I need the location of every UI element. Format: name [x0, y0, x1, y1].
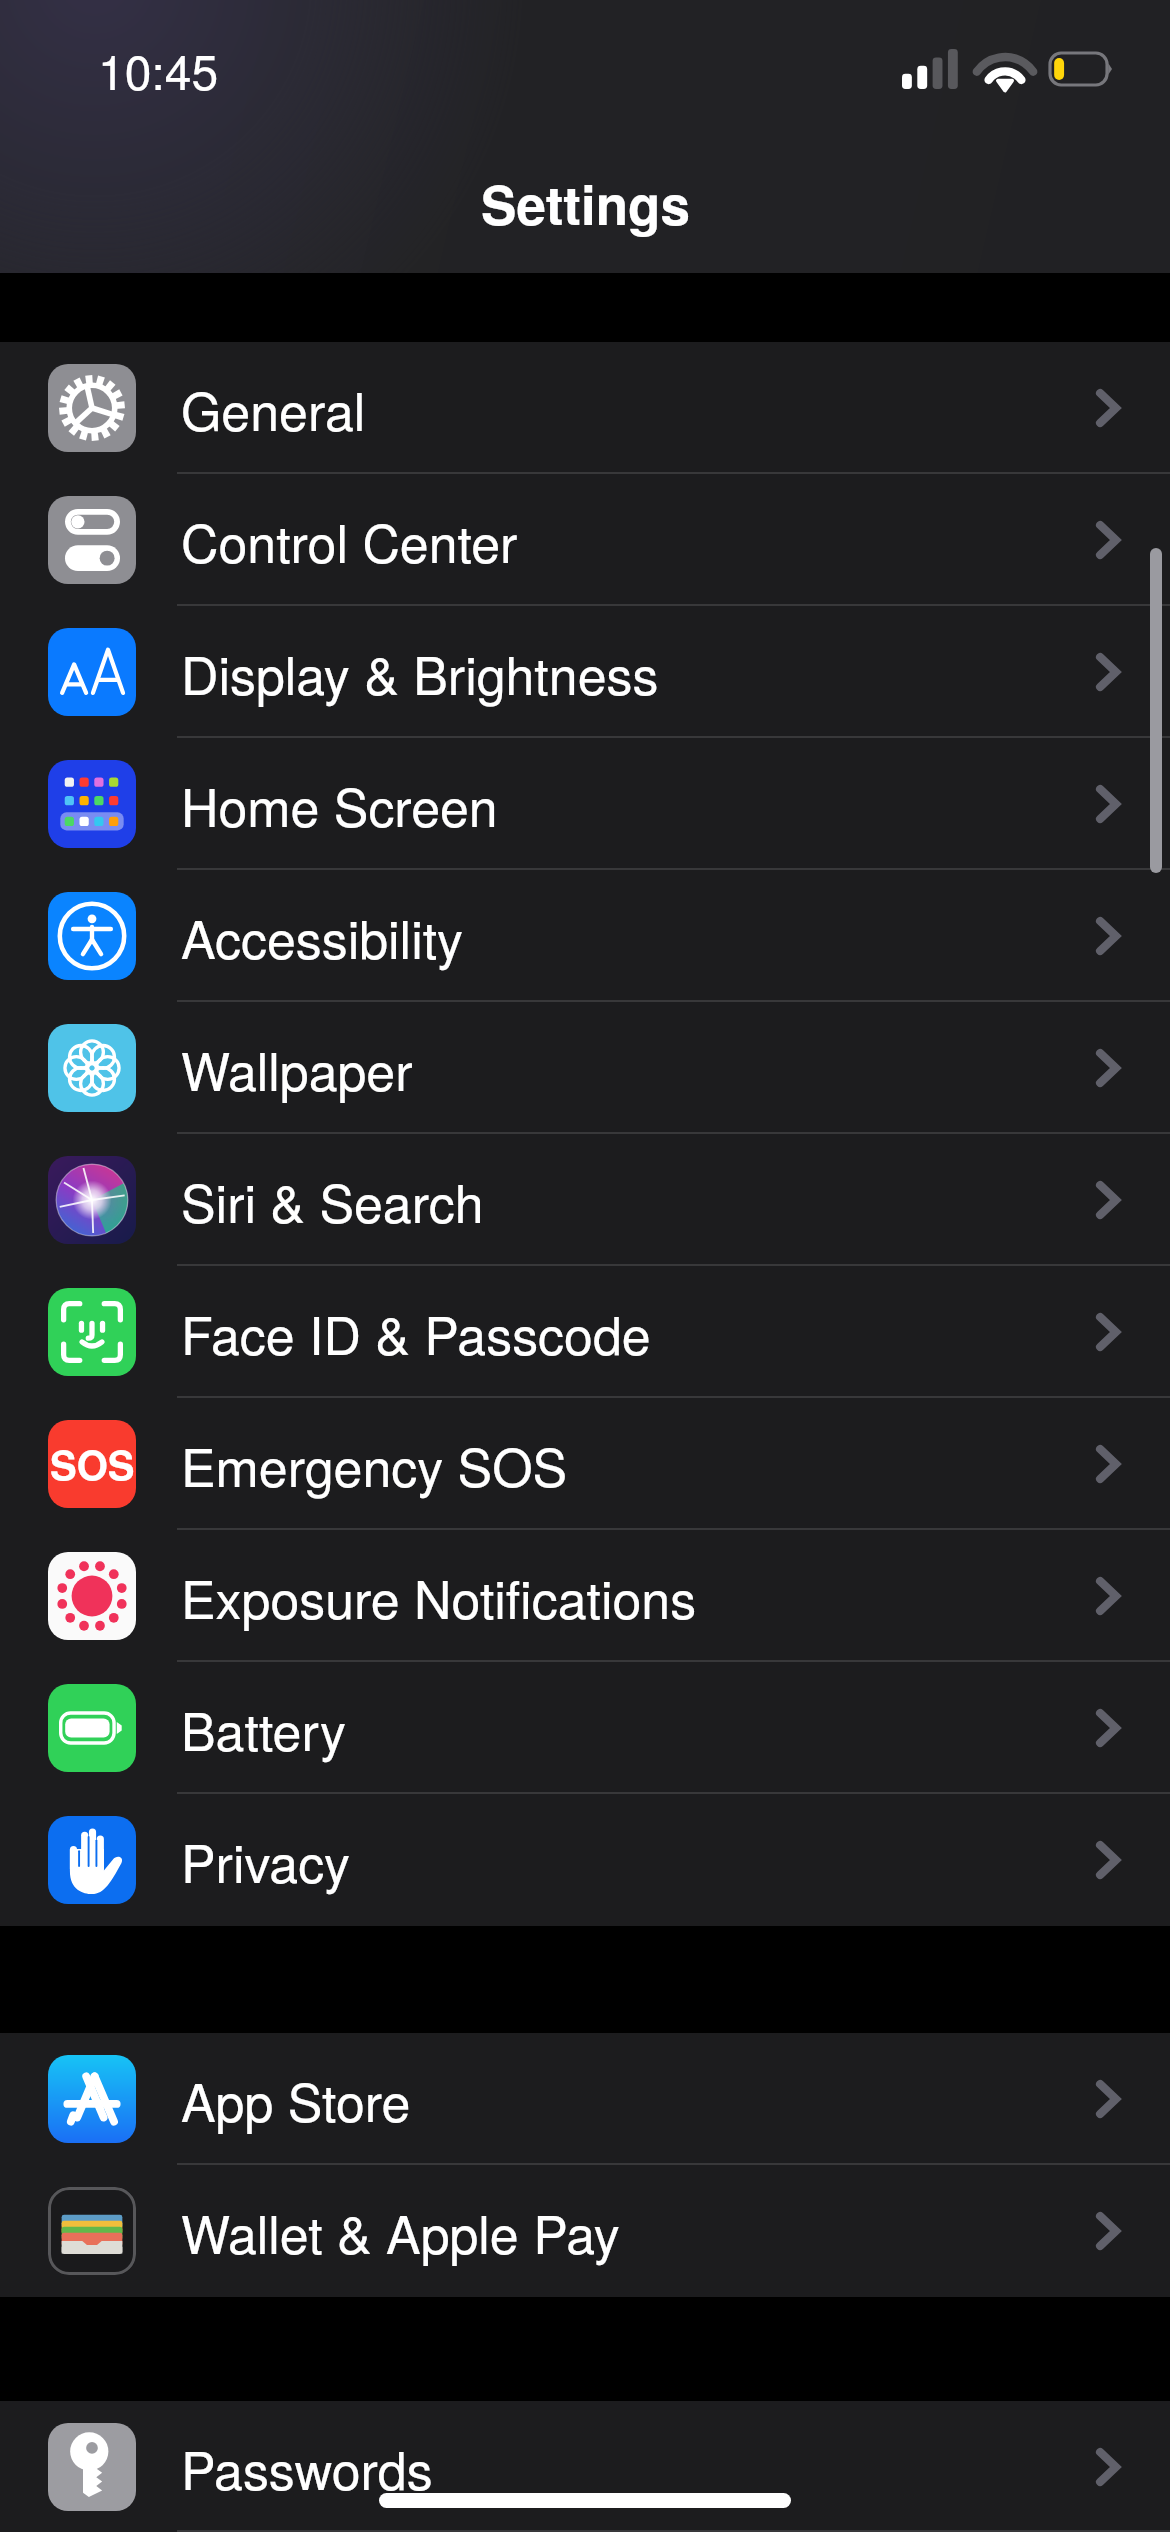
- staticText: Accessibility: [181, 899, 464, 973]
- button[interactable]: Privacy: [0, 1794, 1170, 1926]
- button[interactable]: Wallet & Apple Pay: [0, 2165, 1170, 2297]
- button[interactable]: Accessibility: [0, 870, 1170, 1002]
- staticText: SOS: [50, 1435, 135, 1492]
- button[interactable]: Home Screen: [0, 738, 1170, 870]
- staticText: App Store: [181, 2062, 411, 2136]
- staticText: Display & Brightness: [181, 635, 659, 709]
- staticText: General: [181, 371, 366, 445]
- button[interactable]: General: [0, 342, 1170, 474]
- button[interactable]: App Store: [0, 2033, 1170, 2165]
- staticText: Battery: [181, 1691, 346, 1765]
- button[interactable]: Exposure Notifications: [0, 1530, 1170, 1662]
- staticText: Control Center: [181, 503, 518, 577]
- staticText: Settings: [481, 165, 690, 241]
- staticText: 10:45: [98, 35, 219, 104]
- button[interactable]: Passwords: [0, 2401, 1170, 2532]
- button[interactable]: Display & Brightness: [0, 606, 1170, 738]
- staticText: Passwords: [181, 2430, 433, 2504]
- button[interactable]: Face ID & Passcode: [0, 1266, 1170, 1398]
- staticText: Emergency SOS: [181, 1427, 568, 1501]
- staticText: Siri & Search: [181, 1163, 484, 1237]
- button[interactable]: Control Center: [0, 474, 1170, 606]
- staticText: Face ID & Passcode: [181, 1295, 651, 1369]
- button[interactable]: SOS: [0, 1398, 1170, 1530]
- staticText: Wallpaper: [181, 1031, 413, 1105]
- staticText: Privacy: [181, 1823, 351, 1897]
- staticText: Exposure Notifications: [181, 1559, 697, 1633]
- staticText: Wallet & Apple Pay: [181, 2194, 620, 2268]
- button[interactable]: Battery: [0, 1662, 1170, 1794]
- staticText: Home Screen: [181, 767, 498, 841]
- button[interactable]: Wallpaper: [0, 1002, 1170, 1134]
- button[interactable]: Siri & Search: [0, 1134, 1170, 1266]
